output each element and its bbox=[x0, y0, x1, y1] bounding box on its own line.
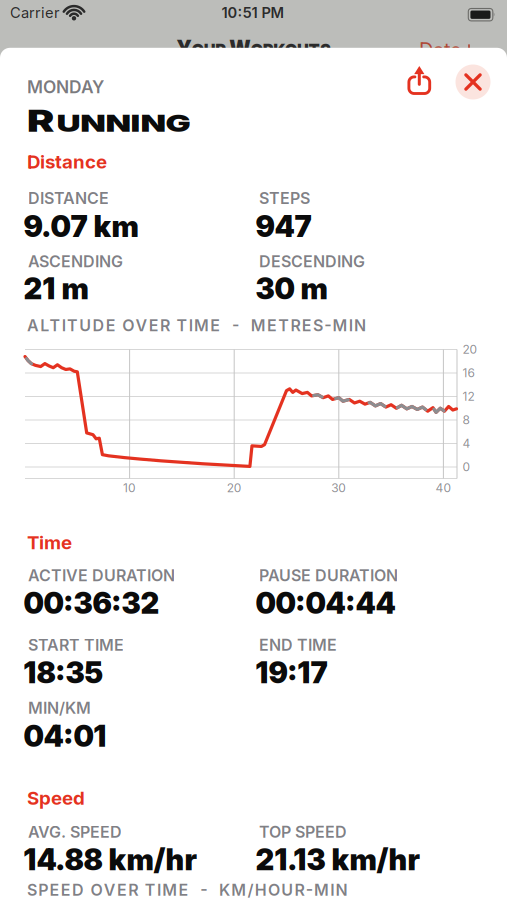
staticText: TOP SPEED bbox=[259, 823, 347, 841]
staticText: 14.88 km/hr bbox=[23, 842, 196, 877]
staticText: Distance bbox=[27, 151, 107, 173]
staticText: AVG. SPEED bbox=[28, 823, 122, 841]
staticText: Carrier bbox=[10, 4, 60, 21]
staticText: SPEED OVER TIME - KM/HOUR-MIN bbox=[27, 880, 347, 899]
staticText: 00:36:32 bbox=[23, 586, 159, 620]
staticText: 04:01 bbox=[23, 719, 106, 753]
staticText: Date bbox=[419, 38, 462, 62]
staticText: 0 bbox=[462, 460, 470, 474]
staticText: UNNING bbox=[48, 109, 144, 137]
staticText: DISTANCE bbox=[28, 189, 109, 208]
staticText: STEPS bbox=[259, 189, 310, 208]
staticText: 9.07 km bbox=[23, 209, 138, 244]
button[interactable]: Close bbox=[455, 64, 490, 99]
staticText: Y bbox=[166, 35, 183, 62]
staticText: R bbox=[27, 104, 47, 138]
staticText: START TIME bbox=[28, 636, 124, 654]
staticText: ACTIVE DURATION bbox=[28, 566, 175, 585]
staticText: 19:17 bbox=[255, 655, 327, 690]
staticText: 8 bbox=[462, 413, 469, 427]
staticText: 20 bbox=[462, 342, 477, 357]
staticText: 30 m bbox=[255, 271, 327, 306]
button[interactable]: Date bbox=[419, 38, 473, 62]
staticText: END TIME bbox=[259, 636, 337, 654]
button[interactable]: Share bbox=[406, 62, 433, 96]
staticText: Time bbox=[27, 531, 72, 553]
staticText: 00:04:44 bbox=[255, 586, 395, 620]
staticText: 21.13 km/hr bbox=[255, 842, 419, 877]
staticText: ORKOUTS bbox=[250, 39, 341, 61]
staticText: 20 bbox=[227, 481, 242, 495]
staticText: MONDAY bbox=[27, 77, 104, 97]
staticText: 10:51 PM bbox=[221, 4, 284, 21]
staticText: Speed bbox=[27, 787, 85, 809]
staticText: 10 bbox=[123, 481, 136, 495]
staticText: DESCENDING bbox=[259, 252, 365, 271]
staticText: 947 bbox=[255, 209, 311, 244]
staticText: ALTITUDE OVER TIME - METRES-MIN bbox=[27, 316, 366, 335]
staticText: ASCENDING bbox=[28, 252, 123, 271]
staticText: W bbox=[226, 35, 250, 62]
staticText: 4 bbox=[462, 436, 470, 451]
staticText: 21 m bbox=[23, 271, 88, 306]
staticText: PAUSE DURATION bbox=[259, 566, 398, 585]
staticText: OUR bbox=[183, 39, 226, 61]
staticText: MIN/KM bbox=[28, 699, 91, 717]
staticText: 18:35 bbox=[23, 655, 103, 690]
staticText: 40 bbox=[435, 481, 451, 495]
staticText: 30 bbox=[331, 481, 346, 495]
staticText: 12 bbox=[462, 389, 474, 404]
staticText: 16 bbox=[462, 366, 474, 380]
